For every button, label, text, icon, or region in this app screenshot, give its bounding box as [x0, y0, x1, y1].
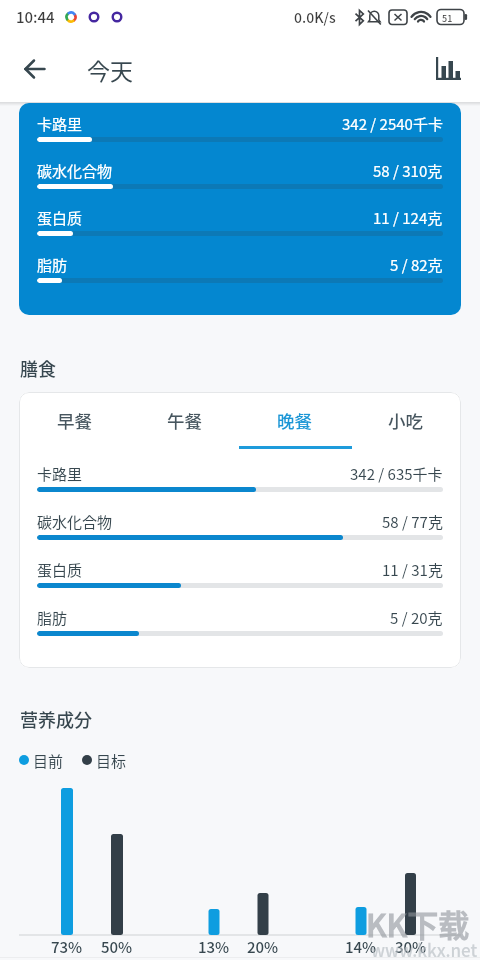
staticText: 营养成分 — [20, 706, 92, 732]
staticText: 脂肪 — [37, 607, 68, 627]
staticText: 膳食 — [20, 355, 56, 381]
staticText: 午餐 — [167, 408, 202, 433]
staticText: 13% — [198, 936, 230, 958]
button[interactable] — [424, 45, 472, 93]
staticText: 碳水化合物 — [37, 511, 113, 531]
staticText: 0.0K/s — [294, 7, 336, 27]
staticText: 5 / 82克 — [390, 254, 443, 274]
staticText: 卡路里 — [37, 463, 83, 483]
button[interactable]: 午餐 — [129, 392, 239, 449]
staticText: 51 — [442, 12, 453, 25]
staticText: 小吃 — [388, 408, 423, 433]
staticText: 脂肪 — [37, 254, 68, 274]
staticText: 晚餐 — [277, 408, 312, 433]
button[interactable]: 早餐 — [19, 392, 129, 449]
staticText: 20% — [247, 936, 279, 958]
staticText: 58 / 310克 — [373, 160, 443, 180]
staticText: 58 / 77克 — [382, 511, 443, 531]
staticText: 10:44 — [16, 6, 55, 28]
staticText: 卡路里 — [37, 113, 83, 133]
button[interactable] — [12, 45, 60, 93]
staticText: 14% — [345, 936, 377, 958]
staticText: 目前 — [33, 750, 64, 770]
staticText: 蛋白质 — [37, 207, 83, 227]
staticText: 5 / 20克 — [390, 607, 443, 627]
staticText: 11 / 31克 — [382, 559, 443, 579]
staticText: www.kkx.net — [371, 937, 478, 960]
staticText: 50% — [101, 936, 133, 958]
staticText: 342 / 2540千卡 — [342, 113, 443, 133]
button[interactable]: 小吃 — [350, 392, 461, 449]
staticText: 11 / 124克 — [373, 207, 443, 227]
staticText: 目标 — [96, 750, 127, 770]
staticText: 30% — [395, 936, 427, 958]
staticText: 73% — [51, 936, 83, 958]
staticText: 早餐 — [57, 408, 92, 433]
staticText: 蛋白质 — [37, 559, 83, 579]
button[interactable]: 晚餐 — [239, 392, 350, 449]
staticText: 342 / 635千卡 — [350, 463, 443, 483]
staticText: 碳水化合物 — [37, 160, 113, 180]
staticText: KK下载 — [366, 901, 470, 946]
staticText: 今天 — [87, 53, 133, 86]
